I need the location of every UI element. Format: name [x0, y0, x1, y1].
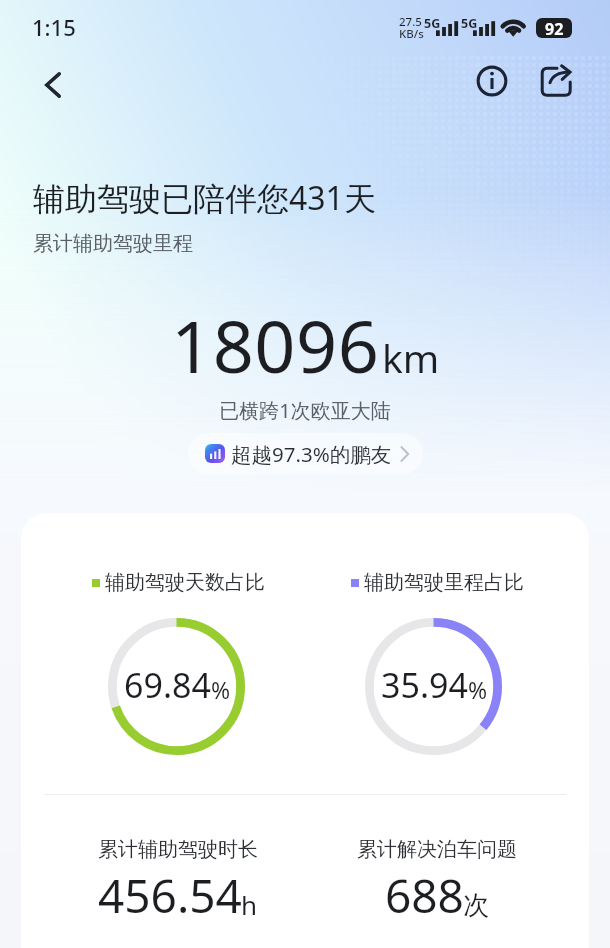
staticText: 5G: [424, 15, 441, 32]
staticText: 456.54: [98, 864, 242, 927]
staticText: 辅助驾驶已陪伴您431天: [33, 176, 376, 220]
staticText: %: [468, 674, 488, 705]
staticText: 累计辅助驾驶里程: [33, 231, 193, 256]
button[interactable]: Info: [469, 58, 515, 104]
staticText: km: [382, 331, 440, 384]
staticText: 已横跨1次欧亚大陆: [0, 397, 610, 424]
staticText: %: [211, 674, 231, 705]
button[interactable]: 超越97.3%的鹏友: [188, 433, 423, 474]
staticText: 次: [463, 889, 489, 922]
staticText: 92: [545, 18, 564, 38]
staticText: 27.5: [399, 14, 422, 30]
staticText: 累计辅助驾驶时长: [98, 837, 258, 862]
staticText: 1:15: [32, 12, 76, 42]
button[interactable]: Back: [31, 63, 75, 107]
staticText: 辅助驾驶天数占比: [105, 570, 265, 595]
staticText: KB/s: [399, 26, 424, 42]
staticText: 超越97.3%的鹏友: [231, 440, 392, 468]
staticText: 688: [385, 864, 464, 927]
staticText: h: [241, 887, 258, 922]
staticText: 18096: [171, 296, 380, 394]
staticText: 5G: [461, 15, 478, 32]
staticText: 35.94: [381, 662, 468, 708]
staticText: 69.84: [124, 662, 211, 708]
staticText: 辅助驾驶里程占比: [364, 570, 524, 595]
button[interactable]: Share: [532, 58, 578, 104]
staticText: 累计解决泊车问题: [357, 837, 517, 862]
